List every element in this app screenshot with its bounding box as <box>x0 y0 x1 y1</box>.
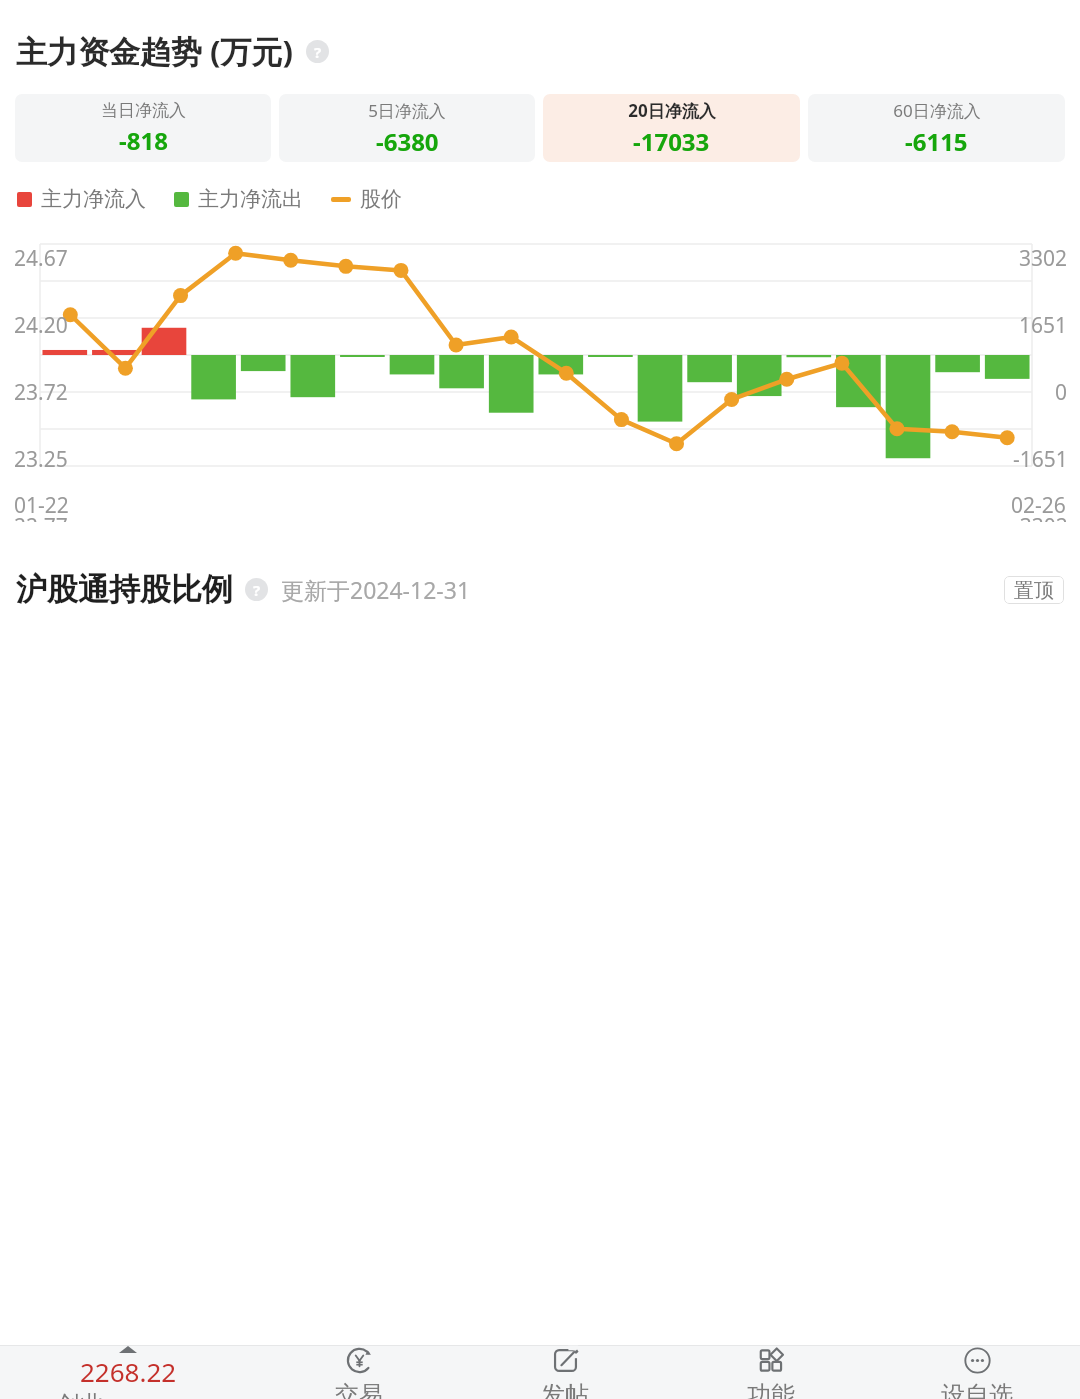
staticText: 2268.22 <box>80 1354 177 1389</box>
button[interactable]: 20日净流入 <box>543 94 800 162</box>
staticText: 设自选 <box>941 1380 1013 1399</box>
staticText: 5日净流入 <box>368 99 446 122</box>
staticText: 3302 <box>1019 244 1068 273</box>
staticText: ? <box>314 42 322 62</box>
staticText: -6115 <box>905 125 968 158</box>
staticText: -17033 <box>633 125 710 158</box>
staticText: 0 <box>1055 378 1068 407</box>
button[interactable]: 帮助 <box>306 40 329 63</box>
staticText: 1651 <box>1019 311 1068 340</box>
staticText: 24.20 <box>14 311 68 340</box>
button[interactable]: 帮助 <box>245 578 268 601</box>
staticText: 交易 <box>335 1380 383 1399</box>
button[interactable]: 5日净流入 <box>279 94 535 162</box>
staticText: 发帖 <box>541 1380 589 1399</box>
staticText: -3302 <box>1013 512 1068 522</box>
button[interactable]: 当日净流入 <box>15 94 271 162</box>
staticText: 22.77 <box>14 512 68 522</box>
staticText: 01-22 <box>14 491 69 520</box>
staticText: 功能 <box>747 1380 795 1399</box>
button[interactable]: 60日净流入 <box>808 94 1065 162</box>
button[interactable]: 设自选 <box>874 1346 1080 1399</box>
staticText: 02-26 <box>1011 491 1066 520</box>
staticText: 24.67 <box>14 244 68 273</box>
staticText: 股价 <box>360 186 402 212</box>
staticText: 置顶 <box>1014 578 1054 603</box>
staticText: 20日净流入 <box>628 99 716 122</box>
staticText: -1651 <box>1013 445 1068 474</box>
staticText: 23.72 <box>14 378 68 407</box>
staticText: 更新于2024-12-31 <box>281 574 471 605</box>
staticText: 当日净流入 <box>101 100 186 121</box>
staticText: 创业 <box>57 1390 103 1399</box>
button[interactable]: 发帖 <box>462 1346 668 1399</box>
button[interactable]: 交易 <box>256 1346 462 1399</box>
button[interactable]: 功能 <box>668 1346 874 1399</box>
staticText: 沪股通持股比例 <box>16 570 233 609</box>
staticText: ? <box>253 580 261 600</box>
staticText: 主力资金趋势 (万元) <box>16 30 294 72</box>
staticText: 主力净流出 <box>198 186 303 212</box>
button[interactable]: 置顶 <box>1004 576 1064 604</box>
staticText: -818 <box>119 124 168 157</box>
staticText: -6380 <box>376 125 439 158</box>
staticText: 23.25 <box>14 445 68 474</box>
staticText: 60日净流入 <box>893 99 981 122</box>
button[interactable]: 2268.22 <box>0 1346 256 1399</box>
staticText: 主力净流入 <box>41 186 146 212</box>
